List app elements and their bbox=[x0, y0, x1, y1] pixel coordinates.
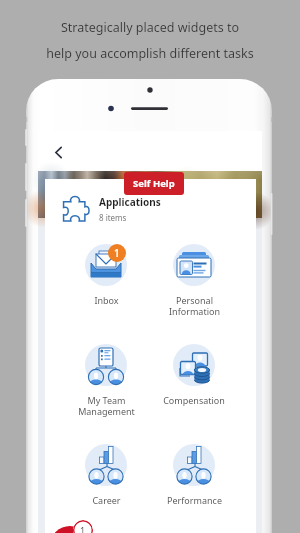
button[interactable]: Chat assistant bbox=[50, 526, 90, 533]
staticText: My Team Management bbox=[78, 394, 135, 417]
button[interactable]: Back bbox=[46, 140, 70, 164]
button[interactable]: Career bbox=[58, 443, 154, 506]
button[interactable]: Compensation bbox=[146, 343, 242, 406]
staticText: Applications bbox=[99, 195, 161, 209]
staticText: 1 bbox=[80, 524, 86, 533]
staticText: Personal Information bbox=[169, 294, 220, 317]
button[interactable]: My Team Management bbox=[58, 343, 154, 417]
button[interactable]: Performance bbox=[146, 443, 242, 506]
staticText: Self Help bbox=[133, 177, 175, 190]
staticText: Performance bbox=[167, 494, 222, 506]
staticText: Inbox bbox=[94, 294, 119, 306]
staticText: 8 items bbox=[99, 212, 127, 223]
button[interactable]: 1 notification bbox=[73, 520, 93, 533]
button[interactable]: Personal Information bbox=[146, 243, 242, 317]
staticText: Compensation bbox=[163, 394, 225, 406]
button[interactable]: Self Help bbox=[124, 172, 184, 195]
staticText: 1 bbox=[114, 246, 120, 260]
staticText: Career bbox=[92, 494, 121, 506]
button[interactable]: 1 bbox=[58, 243, 154, 306]
staticText: help you accomplish different tasks bbox=[0, 45, 300, 62]
staticText: Strategically placed widgets to bbox=[0, 19, 300, 36]
button[interactable]: Applications bbox=[45, 191, 256, 227]
